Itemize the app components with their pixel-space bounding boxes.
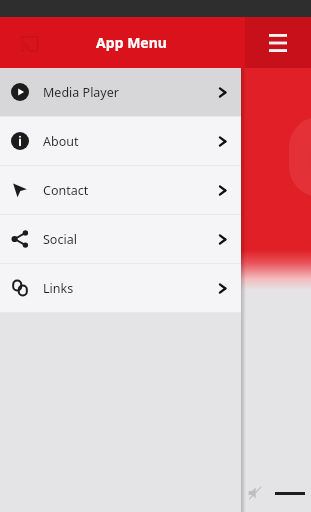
button[interactable]: About [0,117,241,165]
staticText: Social [43,231,77,248]
button[interactable]: Open menu [245,17,311,68]
staticText: Contact [43,182,89,199]
button[interactable]: Cast [14,28,44,58]
staticText: Media Player [43,84,119,101]
button[interactable]: Mute [245,483,265,503]
staticText: Links [43,280,74,297]
staticText: App Menu [96,33,167,52]
button[interactable]: Media Player [0,68,241,116]
button[interactable]: Contact [0,166,241,214]
staticText: About [43,133,79,150]
button[interactable]: Social [0,215,241,263]
button[interactable]: Links [0,264,241,312]
